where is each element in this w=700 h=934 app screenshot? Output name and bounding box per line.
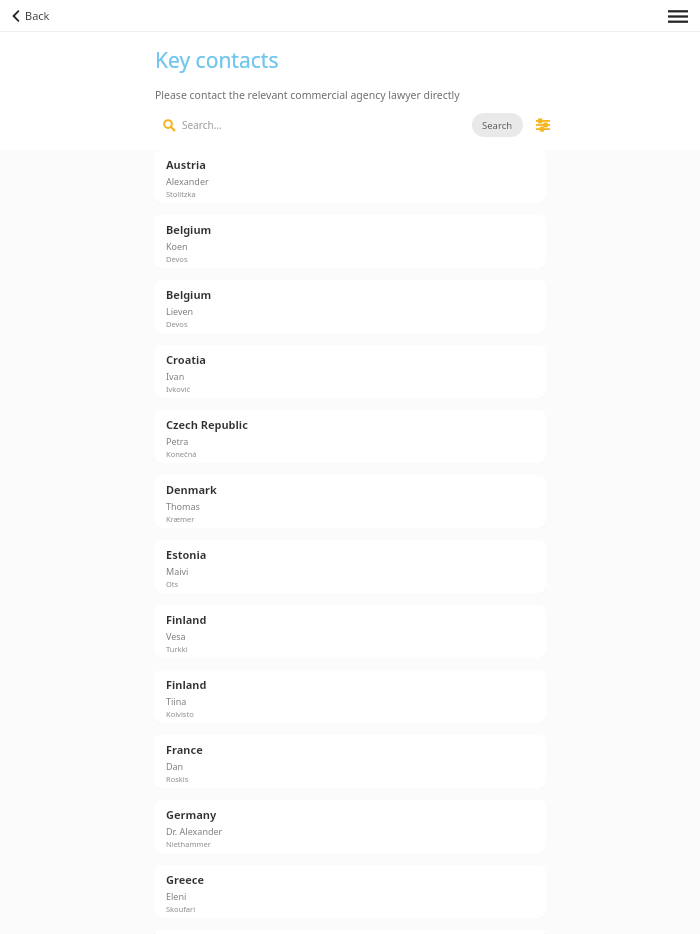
staticText: Denmark xyxy=(166,482,217,497)
staticText: Devos xyxy=(166,254,188,264)
staticText: Niethammer xyxy=(166,839,211,849)
staticText: Back xyxy=(25,8,50,23)
staticText: Dr. Alexander xyxy=(166,825,223,837)
button[interactable]: Search xyxy=(472,113,523,137)
button[interactable]: France xyxy=(154,735,546,788)
button[interactable]: Search... xyxy=(155,112,524,138)
staticText: Ivković xyxy=(166,384,191,394)
button[interactable]: Filter xyxy=(532,114,554,136)
staticText: Eleni xyxy=(166,890,187,902)
staticText: Ots xyxy=(166,579,179,589)
button[interactable]: Estonia xyxy=(154,540,546,593)
staticText: Austria xyxy=(166,157,206,172)
staticText: Koivisto xyxy=(166,709,194,719)
staticText: Tiina xyxy=(166,695,187,707)
button[interactable]: Finland xyxy=(154,605,546,658)
staticText: Koen xyxy=(166,240,188,252)
staticText: Roskis xyxy=(166,774,189,784)
staticText: France xyxy=(166,742,203,757)
staticText: Dan xyxy=(166,760,184,772)
button[interactable]: Denmark xyxy=(154,475,546,528)
staticText: Germany xyxy=(166,807,217,822)
button[interactable]: Germany xyxy=(154,800,546,853)
staticText: Petra xyxy=(166,435,189,447)
staticText: Finland xyxy=(166,612,207,627)
staticText: Alexander xyxy=(166,175,209,187)
staticText: Czech Republic xyxy=(166,417,248,432)
staticText: Please contact the relevant commercial a… xyxy=(155,88,460,102)
staticText: Belgium xyxy=(166,222,212,237)
button[interactable]: Austria xyxy=(154,150,546,203)
staticText: Turkki xyxy=(166,644,188,654)
button[interactable]: Belgium xyxy=(154,215,546,268)
staticText: Search xyxy=(482,119,513,132)
button[interactable]: Finland xyxy=(154,670,546,723)
staticText: Stolitzka xyxy=(166,189,196,199)
staticText: Devos xyxy=(166,319,188,329)
staticText: Croatia xyxy=(166,352,206,367)
button[interactable]: Belgium xyxy=(154,280,546,333)
staticText: Lieven xyxy=(166,305,194,317)
staticText: Thomas xyxy=(166,500,200,512)
staticText: Search... xyxy=(182,118,222,132)
button[interactable]: Back xyxy=(8,3,54,28)
button[interactable]: Croatia xyxy=(154,345,546,398)
staticText: Ivan xyxy=(166,370,185,382)
staticText: Vesa xyxy=(166,630,186,642)
staticText: Estonia xyxy=(166,547,207,562)
button[interactable]: Czech Republic xyxy=(154,410,546,463)
button[interactable]: Greece xyxy=(154,865,546,918)
staticText: Greece xyxy=(166,872,205,887)
staticText: Belgium xyxy=(166,287,212,302)
staticText: Finland xyxy=(166,677,207,692)
staticText: Kræmer xyxy=(166,514,195,524)
staticText: Maivi xyxy=(166,565,189,577)
staticText: Konečná xyxy=(166,449,197,459)
button[interactable]: Menu xyxy=(665,3,691,29)
staticText: Key contacts xyxy=(155,46,279,75)
staticText: Skoufari xyxy=(166,904,196,914)
